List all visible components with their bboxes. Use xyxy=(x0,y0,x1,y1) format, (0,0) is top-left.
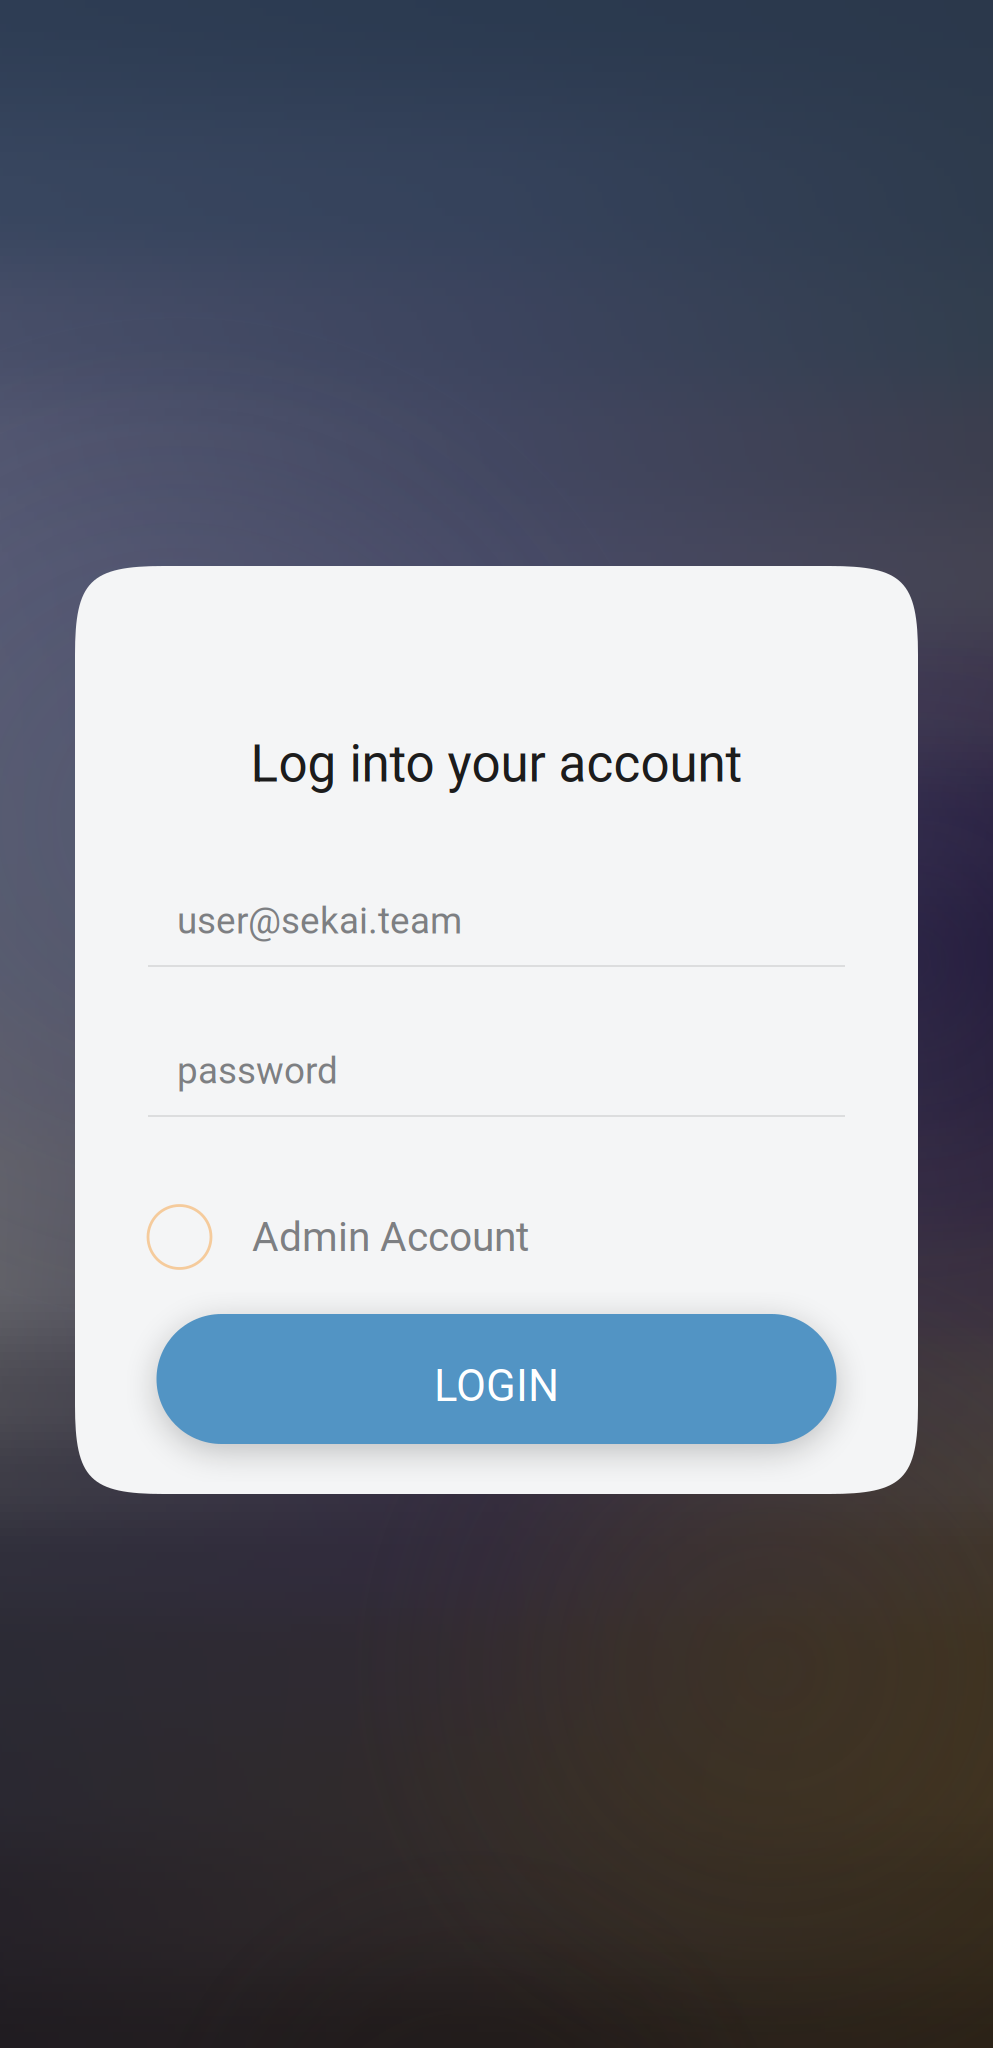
staticText: Admin Account xyxy=(252,1213,529,1261)
button[interactable]: LOGIN xyxy=(156,1314,836,1444)
staticText: Log into your account xyxy=(250,734,742,794)
staticText: LOGIN xyxy=(434,1360,559,1412)
staticText: user@sekai.team xyxy=(177,899,462,942)
button[interactable]: Admin Account xyxy=(148,1202,845,1272)
staticText: password xyxy=(177,1049,338,1092)
